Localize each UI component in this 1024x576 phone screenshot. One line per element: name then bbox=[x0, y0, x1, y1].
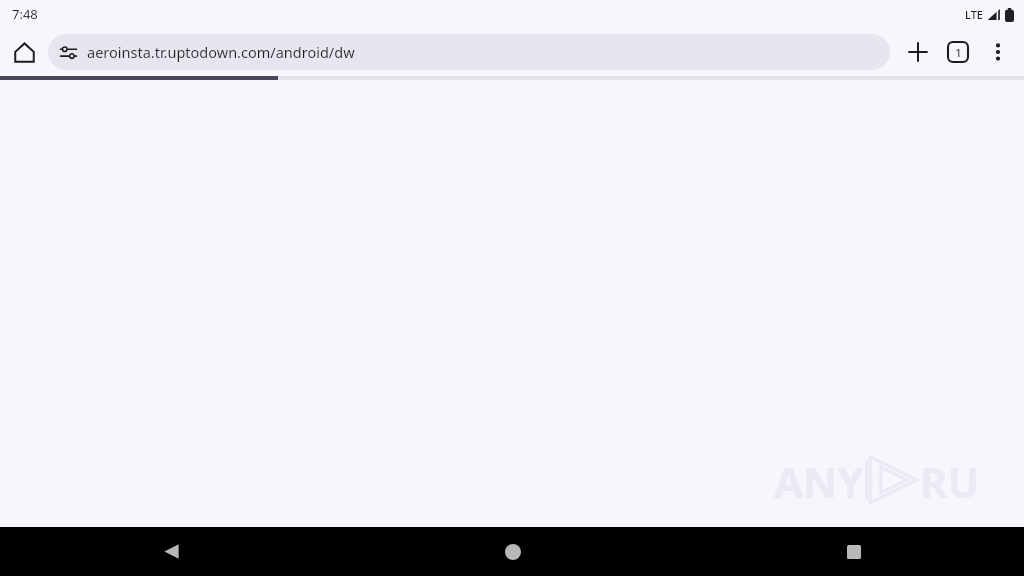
button[interactable]: aeroinsta.tr.uptodown.com/android/dw bbox=[48, 34, 890, 70]
staticText: 1 bbox=[955, 45, 962, 60]
staticText: RUN bbox=[920, 453, 984, 505]
staticText: 7:48 bbox=[12, 5, 38, 23]
staticText: aeroinsta.tr.uptodown.com/android/dw bbox=[87, 42, 355, 62]
button[interactable]: Recent apps bbox=[683, 527, 1024, 576]
staticText: ANY bbox=[774, 453, 864, 505]
button[interactable]: New tab bbox=[898, 32, 938, 72]
button[interactable]: Switch tabs, 1 tab bbox=[938, 32, 978, 72]
staticText: LTE bbox=[965, 7, 983, 22]
button[interactable]: Back bbox=[0, 527, 342, 576]
button[interactable]: More options bbox=[978, 32, 1018, 72]
button[interactable]: Home bbox=[6, 34, 42, 70]
button[interactable]: Home bbox=[342, 527, 683, 576]
